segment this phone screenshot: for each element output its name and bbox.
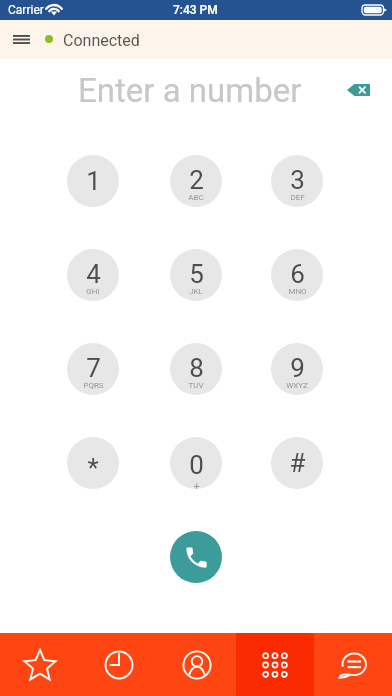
staticText: Carrier <box>8 3 44 17</box>
button[interactable]: 1 <box>67 155 119 207</box>
staticText: 0 <box>189 450 204 480</box>
staticText: 7 <box>86 353 101 383</box>
button[interactable]: 6 <box>271 249 323 301</box>
button[interactable]: 4 <box>67 249 119 301</box>
staticText: Connected <box>63 31 140 50</box>
button[interactable]: * <box>67 437 119 489</box>
button[interactable]: Keypad <box>236 633 314 696</box>
staticText: DEF <box>290 193 305 202</box>
staticText: Enter a number <box>78 71 302 110</box>
staticText: MNO <box>288 287 307 296</box>
button[interactable]: Menu <box>2 20 40 59</box>
button[interactable]: Favorites <box>0 633 79 696</box>
staticText: JKL <box>189 287 203 296</box>
staticText: 1 <box>86 166 101 196</box>
button[interactable]: 7 <box>67 343 119 395</box>
staticText: 7:43 PM <box>173 3 218 17</box>
button[interactable]: 3 <box>271 155 323 207</box>
button[interactable]: 5 <box>170 249 222 301</box>
button[interactable]: 2 <box>170 155 222 207</box>
staticText: PQRS <box>83 381 104 390</box>
button[interactable]: 8 <box>170 343 222 395</box>
button[interactable]: Call <box>170 531 222 583</box>
button[interactable]: Delete <box>341 72 376 108</box>
button[interactable]: # <box>271 437 323 489</box>
button[interactable]: 0 <box>170 437 222 489</box>
staticText: 4 <box>86 259 101 289</box>
staticText: 3 <box>290 165 305 195</box>
button[interactable]: Messages <box>314 633 392 696</box>
staticText: 6 <box>290 259 305 289</box>
staticText: WXYZ <box>286 381 308 390</box>
staticText: ABC <box>188 193 204 202</box>
button[interactable]: Recents <box>79 633 158 696</box>
button[interactable]: Contacts <box>158 633 236 696</box>
staticText: TUV <box>188 381 204 390</box>
staticText: 5 <box>189 259 204 289</box>
staticText: 9 <box>290 353 305 383</box>
staticText: # <box>289 448 306 478</box>
staticText: 8 <box>189 353 204 383</box>
staticText: 2 <box>189 165 204 195</box>
staticText: + <box>193 480 200 489</box>
staticText: GHI <box>86 287 100 296</box>
staticText: * <box>87 453 99 483</box>
button[interactable]: 9 <box>271 343 323 395</box>
